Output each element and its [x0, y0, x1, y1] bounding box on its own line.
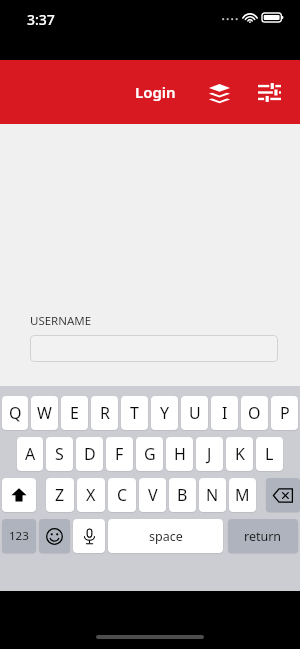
- button[interactable]: W: [31, 396, 58, 430]
- staticText: B: [177, 484, 188, 506]
- staticText: U: [189, 402, 201, 424]
- button[interactable]: V: [139, 478, 166, 512]
- button[interactable]: N: [199, 478, 226, 512]
- staticText: D: [84, 443, 96, 465]
- staticText: K: [235, 443, 245, 465]
- button[interactable]: F: [106, 437, 133, 471]
- button[interactable]: Shift: [2, 478, 36, 512]
- button[interactable]: I: [211, 396, 238, 430]
- button[interactable]: L: [256, 437, 283, 471]
- button[interactable]: Y: [151, 396, 178, 430]
- staticText: USERNAME: [30, 313, 92, 329]
- staticText: L: [265, 443, 274, 465]
- button[interactable]: Layers: [202, 75, 236, 109]
- button[interactable]: Dictation: [73, 519, 105, 553]
- button[interactable]: K: [226, 437, 253, 471]
- button[interactable]: T: [121, 396, 148, 430]
- staticText: M: [235, 484, 250, 506]
- staticText: N: [206, 484, 219, 506]
- button[interactable]: [30, 335, 278, 362]
- button[interactable]: G: [136, 437, 163, 471]
- button[interactable]: J: [196, 437, 223, 471]
- button[interactable]: P: [271, 396, 298, 430]
- button[interactable]: E: [61, 396, 88, 430]
- staticText: Q: [9, 402, 22, 424]
- staticText: Y: [160, 402, 170, 424]
- staticText: F: [115, 443, 124, 465]
- staticText: R: [100, 402, 110, 424]
- button[interactable]: A: [17, 437, 43, 471]
- button[interactable]: space: [108, 519, 223, 553]
- button[interactable]: C: [108, 478, 136, 512]
- button[interactable]: H: [166, 437, 193, 471]
- button[interactable]: Z: [46, 478, 74, 512]
- button[interactable]: D: [76, 437, 103, 471]
- staticText: X: [86, 484, 96, 506]
- staticText: I: [222, 402, 228, 424]
- button[interactable]: M: [229, 478, 256, 512]
- button[interactable]: 123: [2, 519, 36, 553]
- staticText: C: [117, 484, 128, 506]
- button[interactable]: Login: [131, 74, 180, 110]
- staticText: 123: [9, 528, 29, 544]
- staticText: P: [280, 402, 290, 424]
- button[interactable]: Q: [2, 396, 28, 430]
- button[interactable]: O: [241, 396, 268, 430]
- button[interactable]: Settings: [252, 75, 286, 109]
- staticText: E: [70, 402, 79, 424]
- button[interactable]: R: [91, 396, 118, 430]
- staticText: H: [174, 443, 186, 465]
- button[interactable]: Backspace: [266, 478, 300, 512]
- staticText: G: [144, 443, 156, 465]
- staticText: W: [37, 402, 52, 424]
- staticText: J: [207, 443, 212, 465]
- staticText: 3:37: [27, 10, 55, 29]
- staticText: return: [244, 528, 282, 545]
- staticText: Z: [55, 484, 65, 506]
- button[interactable]: Emoji: [39, 519, 70, 553]
- staticText: T: [130, 402, 139, 424]
- button[interactable]: X: [77, 478, 105, 512]
- button[interactable]: U: [181, 396, 208, 430]
- button[interactable]: B: [169, 478, 196, 512]
- button[interactable]: S: [46, 437, 73, 471]
- staticText: V: [148, 484, 158, 506]
- staticText: S: [55, 443, 64, 465]
- button[interactable]: return: [228, 519, 298, 553]
- staticText: O: [248, 402, 261, 424]
- staticText: space: [149, 528, 183, 545]
- staticText: A: [25, 443, 36, 465]
- staticText: Login: [135, 82, 176, 102]
